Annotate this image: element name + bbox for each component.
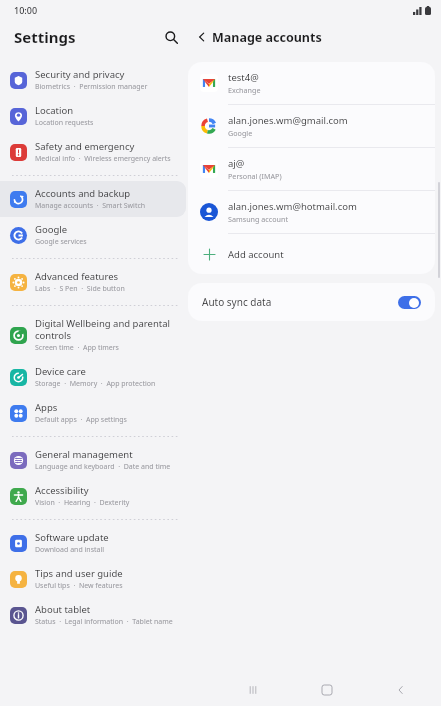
staticText: alan.jones.wm@gmail.com (228, 114, 348, 127)
staticText: Safety and emergency (35, 140, 135, 153)
staticText: Digital Wellbeing and parental controls (35, 317, 180, 342)
staticText: Auto sync data (202, 295, 398, 309)
button[interactable]: Location (0, 98, 186, 134)
staticText: Labs · S Pen · Side button (35, 284, 125, 294)
button[interactable]: Apps (0, 395, 186, 431)
button[interactable]: Add account (188, 234, 435, 274)
staticText: Exchange (228, 85, 261, 95)
staticText: Apps (35, 401, 58, 414)
staticText: About tablet (35, 603, 91, 616)
button[interactable]: Recents (231, 674, 275, 706)
staticText: Settings (14, 27, 76, 47)
staticText: Manage accounts · Smart Switch (35, 201, 146, 211)
button[interactable]: alan.jones.wm@hotmail.com (188, 191, 435, 233)
staticText: Language and keyboard · Date and time (35, 462, 171, 472)
button[interactable]: About tablet (0, 597, 186, 633)
staticText: Personal (IMAP) (228, 171, 282, 181)
staticText: Accessibility (35, 484, 89, 497)
button[interactable]: General management (0, 442, 186, 478)
staticText: General management (35, 448, 133, 461)
staticText: test4@ (228, 71, 259, 84)
staticText: Google (35, 223, 68, 236)
button[interactable]: Tips and user guide (0, 561, 186, 597)
staticText: aj@ (228, 157, 245, 170)
button[interactable]: Search (158, 24, 184, 50)
staticText: Biometrics · Permission manager (35, 82, 148, 92)
button[interactable]: Safety and emergency (0, 134, 186, 170)
button[interactable]: Back (189, 24, 215, 50)
staticText: Google services (35, 237, 87, 247)
staticText: Download and install (35, 545, 105, 555)
button[interactable]: Home (305, 674, 349, 706)
button[interactable]: Google (0, 217, 186, 253)
staticText: alan.jones.wm@hotmail.com (228, 200, 357, 213)
button[interactable]: Auto sync data (188, 283, 435, 321)
staticText: Google (228, 128, 253, 138)
button[interactable]: test4@ (188, 62, 435, 104)
staticText: Location requests (35, 118, 94, 128)
staticText: Device care (35, 365, 86, 378)
staticText: Software update (35, 531, 109, 544)
staticText: Storage · Memory · App protection (35, 379, 156, 389)
staticText: Advanced features (35, 270, 119, 283)
staticText: Default apps · App settings (35, 415, 127, 425)
staticText: Location (35, 104, 74, 117)
button[interactable]: Security and privacy (0, 62, 186, 98)
staticText: Accounts and backup (35, 187, 131, 200)
staticText: 10:00 (14, 4, 38, 16)
staticText: Security and privacy (35, 68, 125, 81)
staticText: Add account (228, 248, 284, 261)
button[interactable]: Software update (0, 525, 186, 561)
button[interactable]: Device care (0, 359, 186, 395)
staticText: Screen time · App timers (35, 343, 119, 353)
button[interactable]: aj@ (188, 148, 435, 190)
button[interactable]: Back (379, 674, 423, 706)
button[interactable]: alan.jones.wm@gmail.com (188, 105, 435, 147)
staticText: Useful tips · New features (35, 581, 123, 591)
staticText: Status · Legal information · Tablet name (35, 617, 173, 627)
staticText: Medical info · Wireless emergency alerts (35, 154, 171, 164)
staticText: Manage accounts (212, 29, 322, 46)
button[interactable]: Digital Wellbeing and parental controls (0, 311, 186, 359)
button[interactable]: Accounts and backup (0, 181, 186, 217)
button[interactable]: Advanced features (0, 264, 186, 300)
staticText: Vision · Hearing · Dexterity (35, 498, 130, 508)
staticText: Samsung account (228, 214, 289, 224)
button[interactable]: Accessibility (0, 478, 186, 514)
staticText: Tips and user guide (35, 567, 123, 580)
